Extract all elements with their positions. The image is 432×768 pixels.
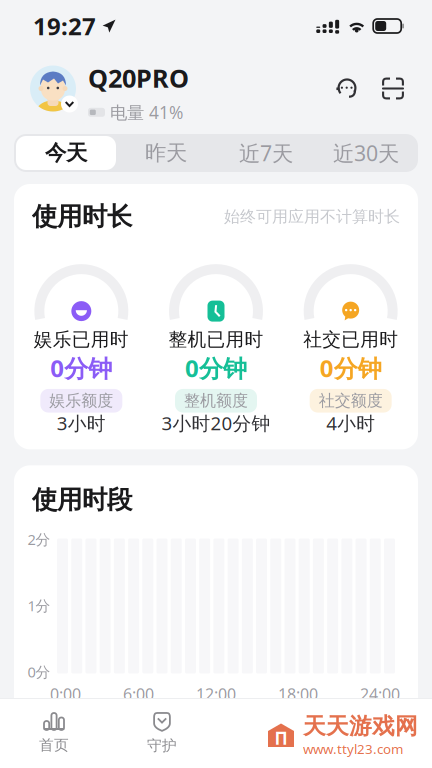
- staticText: 0分钟: [185, 352, 247, 384]
- staticText: 昨天: [145, 140, 187, 166]
- staticText: Q20PRO: [88, 61, 189, 95]
- button[interactable]: 守护: [108, 702, 216, 764]
- staticText: 始终可用应用不计算时长: [224, 207, 400, 226]
- button[interactable]: 客服: [328, 69, 366, 107]
- staticText: 2分: [27, 529, 50, 549]
- staticText: 3小时: [57, 411, 106, 435]
- staticText: 24:00: [360, 683, 400, 705]
- staticText: 4小时: [326, 411, 375, 435]
- button[interactable]: 近7天: [216, 136, 316, 170]
- staticText: 3小时20分钟: [161, 411, 270, 435]
- button[interactable]: 扫一扫: [374, 69, 412, 107]
- staticText: 0分钟: [320, 352, 382, 384]
- staticText: 18:00: [278, 683, 318, 705]
- button[interactable]: 首页: [0, 702, 108, 764]
- staticText: 1分: [27, 596, 50, 615]
- staticText: 整机额度: [184, 391, 248, 411]
- staticText: 6:00: [123, 683, 154, 705]
- staticText: 整机已用时: [168, 328, 263, 351]
- staticText: 首页: [39, 736, 69, 754]
- staticText: 娱乐额度: [49, 391, 113, 411]
- staticText: 0:00: [50, 683, 81, 705]
- staticText: П: [274, 726, 287, 749]
- staticText: 社交额度: [319, 391, 383, 411]
- staticText: 使用时长: [32, 201, 132, 232]
- staticText: 0分: [27, 662, 50, 681]
- button[interactable]: 昨天: [116, 136, 216, 170]
- staticText: 近7天: [239, 139, 293, 167]
- staticText: 今天: [45, 140, 87, 166]
- staticText: 守护: [147, 736, 177, 754]
- button[interactable]: 今天: [16, 136, 116, 170]
- staticText: 19:27: [33, 10, 96, 42]
- staticText: 娱乐已用时: [34, 328, 129, 351]
- staticText: 12:00: [196, 683, 236, 705]
- staticText: www.ttyl23.com: [303, 740, 403, 758]
- staticText: 0分钟: [50, 352, 112, 384]
- staticText: 电量 41%: [110, 101, 183, 124]
- button[interactable]: 近30天: [316, 136, 416, 170]
- staticText: 天天游戏网: [303, 712, 418, 740]
- staticText: 使用时段: [32, 484, 132, 515]
- staticText: 近30天: [333, 139, 399, 167]
- staticText: 社交已用时: [303, 328, 398, 351]
